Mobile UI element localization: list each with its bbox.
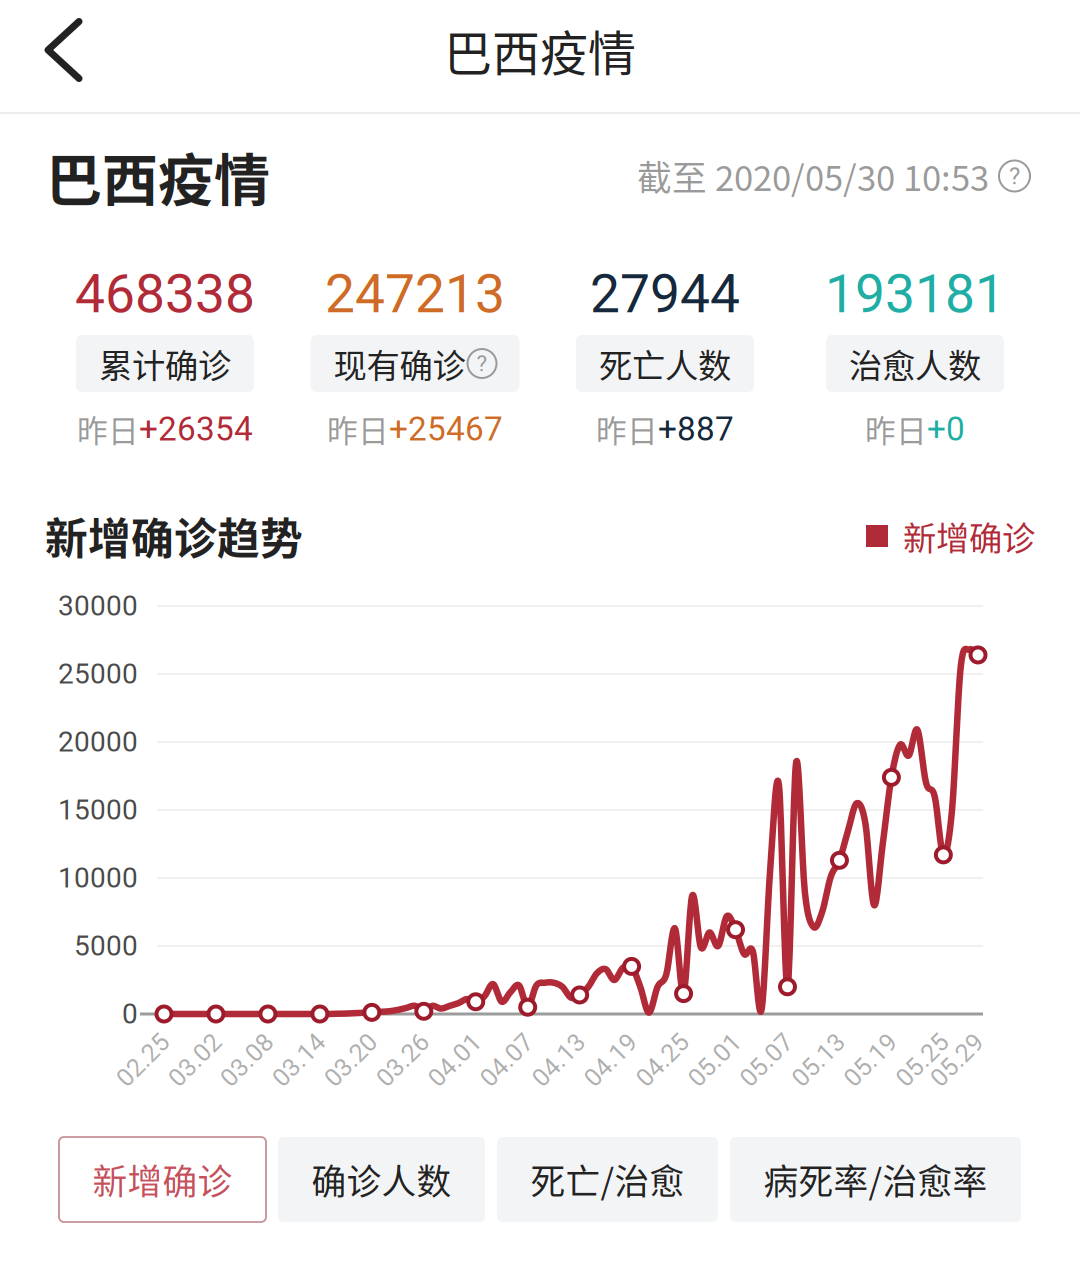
staticText: ? <box>476 350 487 377</box>
staticText: 10000 <box>58 862 138 894</box>
staticText: 25000 <box>58 658 138 690</box>
staticText: 04.01 <box>423 1045 486 1075</box>
staticText: 03.02 <box>163 1045 226 1075</box>
staticText: 确诊人数 <box>311 1154 451 1205</box>
staticText: 死亡/治愈 <box>530 1154 684 1205</box>
staticText: 04.13 <box>527 1045 590 1075</box>
staticText: 巴西疫情 <box>444 15 636 85</box>
staticText: 04.25 <box>631 1045 694 1075</box>
staticText: 现有确诊 <box>333 339 465 388</box>
staticText: +26354 <box>139 409 253 449</box>
staticText: 27944 <box>590 263 740 325</box>
staticText: 0 <box>122 998 138 1030</box>
staticText: ? <box>1009 162 1020 190</box>
staticText: 193181 <box>825 263 1005 325</box>
staticText: 05.01 <box>683 1045 746 1075</box>
staticText: 04.07 <box>475 1045 538 1075</box>
staticText: 247213 <box>325 263 505 325</box>
staticText: 05.25 <box>891 1045 954 1075</box>
staticText: 05.07 <box>735 1045 798 1075</box>
staticText: 30000 <box>58 590 138 622</box>
staticText: 02.25 <box>111 1045 174 1075</box>
staticText: 累计确诊 <box>99 339 231 388</box>
staticText: 03.20 <box>319 1045 382 1075</box>
staticText: 新增确诊 <box>92 1154 232 1205</box>
staticText: 468338 <box>75 263 255 325</box>
staticText: 05.29 <box>925 1045 988 1075</box>
staticText: 昨日 <box>865 407 927 451</box>
staticText: 昨日 <box>77 407 139 451</box>
staticText: 15000 <box>58 794 138 826</box>
staticText: 03.08 <box>215 1045 278 1075</box>
staticText: 昨日 <box>596 407 658 451</box>
button[interactable]: 病死率/治愈率 <box>730 1137 1021 1222</box>
staticText: 20000 <box>58 726 138 758</box>
staticText: 新增确诊 <box>903 512 1035 560</box>
button[interactable]: 死亡/治愈 <box>497 1137 718 1222</box>
staticText: 05.13 <box>787 1045 850 1075</box>
staticText: 昨日 <box>327 407 389 451</box>
staticText: +0 <box>927 409 965 449</box>
button[interactable]: Back <box>0 0 115 102</box>
staticText: 03.14 <box>267 1045 330 1075</box>
button[interactable]: 确诊人数 <box>278 1137 485 1222</box>
staticText: 巴西疫情 <box>46 135 270 217</box>
staticText: 治愈人数 <box>849 339 981 388</box>
staticText: 新增确诊趋势 <box>45 505 303 567</box>
button[interactable]: 新增确诊 <box>59 1137 266 1222</box>
staticText: 04.19 <box>579 1045 642 1075</box>
staticText: +25467 <box>389 409 503 449</box>
staticText: 05.19 <box>839 1045 902 1075</box>
staticText: 5000 <box>74 930 138 962</box>
staticText: 03.26 <box>371 1045 434 1075</box>
staticText: +887 <box>658 409 734 449</box>
staticText: 截至 2020/05/30 10:53 <box>637 151 989 201</box>
staticText: 死亡人数 <box>599 339 731 388</box>
staticText: 病死率/治愈率 <box>763 1154 987 1205</box>
